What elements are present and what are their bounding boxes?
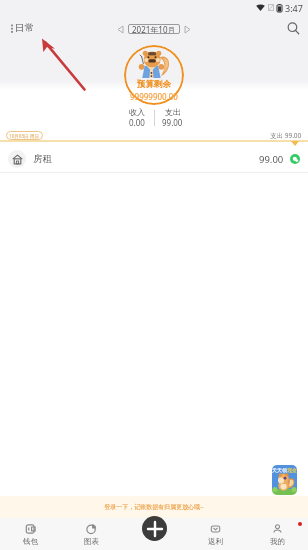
staticText: 99999900.00 (130, 91, 178, 102)
staticText: 支出 (165, 107, 181, 117)
button[interactable]: 返利 (184, 518, 246, 550)
button[interactable]: 2021年10月 (128, 24, 180, 34)
staticText: 房租 (33, 153, 52, 165)
staticText: 10月03日 周日 (9, 133, 40, 139)
button[interactable]: 图表 (61, 518, 122, 550)
button[interactable]: Add record (142, 516, 167, 541)
staticText: 3:47 (285, 2, 303, 14)
staticText: 99.00 (162, 117, 183, 128)
staticText: 支出 99.00 (270, 131, 302, 140)
staticText: 预算剩余 (137, 79, 171, 90)
button[interactable]: 钱包 (0, 518, 61, 550)
staticText: 2021年10月 (132, 24, 176, 34)
staticText: 天天领 (272, 467, 287, 473)
staticText: 钱包 (23, 537, 38, 546)
button[interactable]: 10月03日 周日 (6, 131, 43, 140)
button[interactable] (124, 45, 184, 105)
button[interactable]: 我的 (246, 518, 308, 550)
staticText: 99.00 (259, 153, 284, 166)
staticText: 日常 (15, 22, 34, 34)
button[interactable]: Previous month (118, 26, 123, 33)
staticText: 0.00 (129, 117, 145, 128)
staticText: 现金 (287, 467, 297, 473)
staticText: 图表 (84, 537, 99, 546)
staticText: 登录一下，记账数据有归属更放心哦~ (104, 503, 204, 511)
button[interactable]: 房租 (0, 146, 308, 172)
staticText: 返利 (208, 537, 223, 546)
button[interactable]: 登录一下，记账数据有归属更放心哦~ (0, 496, 308, 518)
button[interactable]: Promotion (272, 465, 297, 495)
staticText: 我的 (270, 537, 285, 546)
button[interactable]: Search (283, 18, 303, 38)
staticText: 收入 (129, 107, 145, 117)
button[interactable]: Next month (185, 26, 190, 33)
button[interactable]: 日常 (11, 22, 34, 34)
